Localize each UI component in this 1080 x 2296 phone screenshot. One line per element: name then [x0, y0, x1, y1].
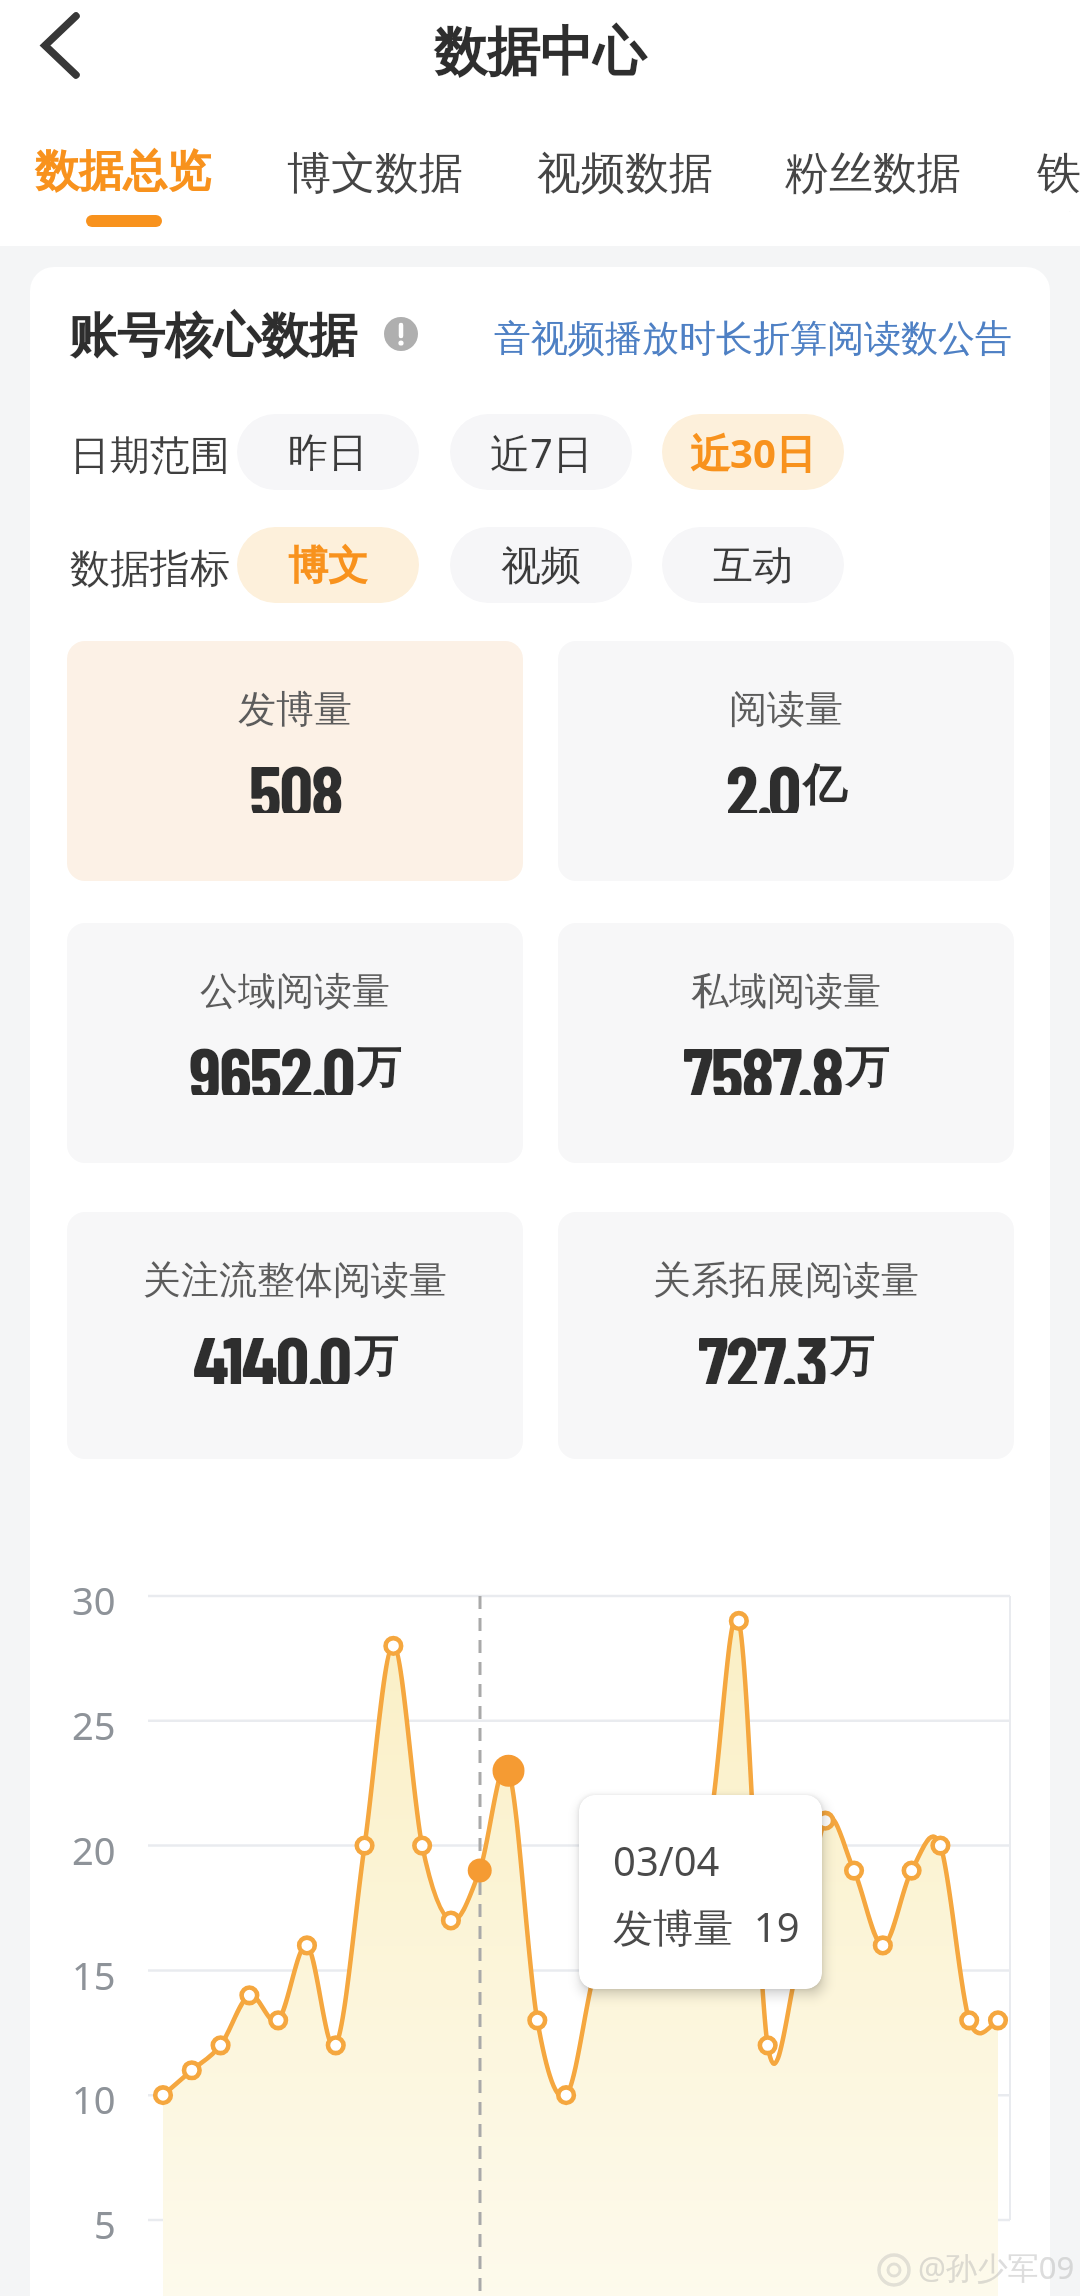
staticText: 2.0	[726, 745, 800, 813]
staticText: 近7日	[490, 425, 593, 480]
staticText: 万	[354, 1329, 398, 1384]
button[interactable]: 视频数据	[537, 146, 713, 212]
staticText: 727.3	[698, 1316, 827, 1384]
staticText: 铁粉	[1037, 146, 1080, 212]
staticText: 近30日	[690, 425, 816, 480]
staticText: 万	[830, 1329, 874, 1384]
button[interactable]: 数据总览	[35, 144, 211, 244]
staticText: 数据总览	[35, 144, 211, 199]
button[interactable]: 关注流整体阅读量	[67, 1212, 523, 1459]
staticText: 博文	[288, 540, 368, 590]
staticText: 账号核心数据	[69, 306, 357, 366]
staticText: 4140.0	[193, 1316, 351, 1384]
staticText: 博文数据	[287, 146, 463, 201]
staticText: 发博量	[238, 685, 352, 733]
staticText: 粉丝数据	[785, 146, 961, 201]
staticText: 音视频播放时长折算阅读数公告	[494, 315, 1012, 359]
staticText: 昨日	[288, 427, 368, 477]
button[interactable]: 铁粉	[1037, 146, 1080, 212]
button[interactable]: 发博量	[67, 641, 523, 881]
button[interactable]: 昨日	[237, 414, 419, 490]
staticText: 03/04	[613, 1833, 720, 1887]
button[interactable]: 博文	[237, 527, 419, 603]
staticText: 万	[845, 1040, 889, 1095]
staticText: 阅读量	[729, 685, 843, 733]
staticText: 20	[72, 1824, 116, 1868]
button[interactable]	[20, 8, 100, 92]
button[interactable]: 私域阅读量	[558, 923, 1014, 1163]
staticText: 关系拓展阅读量	[653, 1256, 919, 1304]
button[interactable]: 博文数据	[287, 146, 463, 212]
button[interactable]: 视频	[450, 527, 632, 603]
button[interactable]: 近7日	[450, 414, 632, 490]
button[interactable]: 阅读量	[558, 641, 1014, 881]
staticText: 视频	[501, 540, 581, 590]
staticText: 关注流整体阅读量	[143, 1256, 447, 1304]
staticText: 视频数据	[537, 146, 713, 201]
staticText: 7587.8	[683, 1027, 842, 1095]
button[interactable]: 近30日	[662, 414, 844, 490]
staticText: 10	[72, 2073, 116, 2117]
button[interactable]: 音视频播放时长折算阅读数公告	[480, 315, 1012, 359]
staticText: 25	[72, 1699, 116, 1743]
staticText: 日期范围	[70, 430, 230, 480]
button[interactable]: 粉丝数据	[785, 146, 961, 212]
staticText: 508	[249, 745, 342, 813]
staticText: 30	[72, 1574, 116, 1618]
staticText: 私域阅读量	[691, 967, 881, 1015]
staticText: 数据中心	[434, 19, 646, 86]
staticText: @孙少军09	[918, 2246, 1075, 2288]
staticText: 5	[94, 2198, 116, 2242]
staticText: 数据指标	[70, 543, 230, 593]
staticText: 15	[72, 1949, 116, 1993]
button[interactable]: 互动	[662, 527, 844, 603]
button[interactable]: 公域阅读量	[67, 923, 523, 1163]
staticText: 互动	[713, 540, 793, 590]
button[interactable]: 关系拓展阅读量	[558, 1212, 1014, 1459]
staticText: 公域阅读量	[200, 967, 390, 1015]
staticText: 亿	[803, 758, 847, 813]
staticText: 万	[357, 1040, 401, 1095]
staticText: 9652.0	[189, 1027, 354, 1095]
staticText: 发博量 19	[613, 1899, 800, 1954]
